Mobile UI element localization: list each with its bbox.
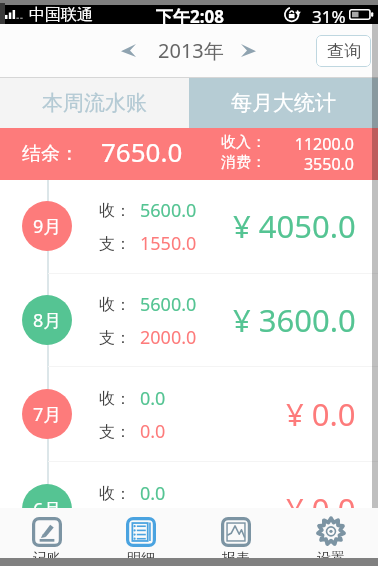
- staticText: 收：: [99, 201, 131, 221]
- button[interactable]: 7月: [0, 367, 378, 462]
- staticText: 5600.0: [140, 198, 197, 223]
- staticText: 6月: [33, 497, 62, 522]
- staticText: 收：: [99, 484, 131, 504]
- button[interactable]: 9月: [0, 180, 378, 274]
- staticText: 1550.0: [140, 231, 197, 256]
- staticText: ¥ 4050.0: [233, 205, 356, 247]
- button[interactable]: 6月: [0, 462, 378, 557]
- button[interactable]: 本周流水账: [0, 78, 189, 128]
- staticText: 消费：: [221, 153, 266, 172]
- staticText: ¥ 0.0: [286, 488, 356, 530]
- staticText: 2000.0: [140, 325, 197, 350]
- button[interactable]: 设置: [283, 508, 378, 558]
- staticText: 5600.0: [140, 292, 197, 317]
- staticText: 7月: [33, 402, 62, 427]
- staticText: 31%: [312, 5, 346, 24]
- staticText: 支：: [99, 422, 131, 442]
- button[interactable]: 查询: [316, 35, 371, 67]
- staticText: 7650.0: [101, 134, 183, 169]
- staticText: 下午2:08: [156, 5, 224, 24]
- staticText: 8月: [33, 308, 62, 333]
- staticText: 0.0: [140, 386, 166, 411]
- staticText: 3550.0: [266, 153, 354, 175]
- staticText: 支：: [99, 517, 131, 537]
- staticText: 11200.0: [266, 133, 354, 155]
- staticText: 2013年: [158, 37, 224, 64]
- staticText: 9月: [33, 214, 62, 239]
- staticText: 结余：: [22, 142, 79, 166]
- staticText: 记账: [33, 550, 61, 558]
- staticText: 每月大统计: [231, 90, 336, 116]
- button[interactable]: 报表: [188, 508, 283, 558]
- staticText: 支：: [99, 234, 131, 254]
- button[interactable]: 8月: [0, 274, 378, 367]
- staticText: 设置: [317, 550, 345, 558]
- staticText: 收：: [99, 295, 131, 315]
- button[interactable]: 明细: [94, 508, 188, 558]
- staticText: 0.0: [140, 514, 166, 539]
- staticText: 支：: [99, 328, 131, 348]
- button[interactable]: 上一年: [113, 24, 143, 77]
- button[interactable]: 记账: [0, 508, 94, 558]
- staticText: 查询: [327, 41, 361, 62]
- staticText: ¥ 0.0: [286, 393, 356, 435]
- staticText: 0.0: [140, 481, 166, 506]
- staticText: 报表: [222, 550, 250, 558]
- staticText: ¥ 3600.0: [233, 299, 356, 341]
- staticText: 收：: [99, 389, 131, 409]
- button[interactable]: 下一年: [233, 24, 263, 77]
- staticText: 收入：: [221, 133, 266, 152]
- staticText: 本周流水账: [42, 90, 147, 116]
- button[interactable]: 每月大统计: [189, 78, 378, 128]
- staticText: 中国联通: [29, 5, 93, 24]
- staticText: 明细: [127, 550, 155, 558]
- staticText: 0.0: [140, 419, 166, 444]
